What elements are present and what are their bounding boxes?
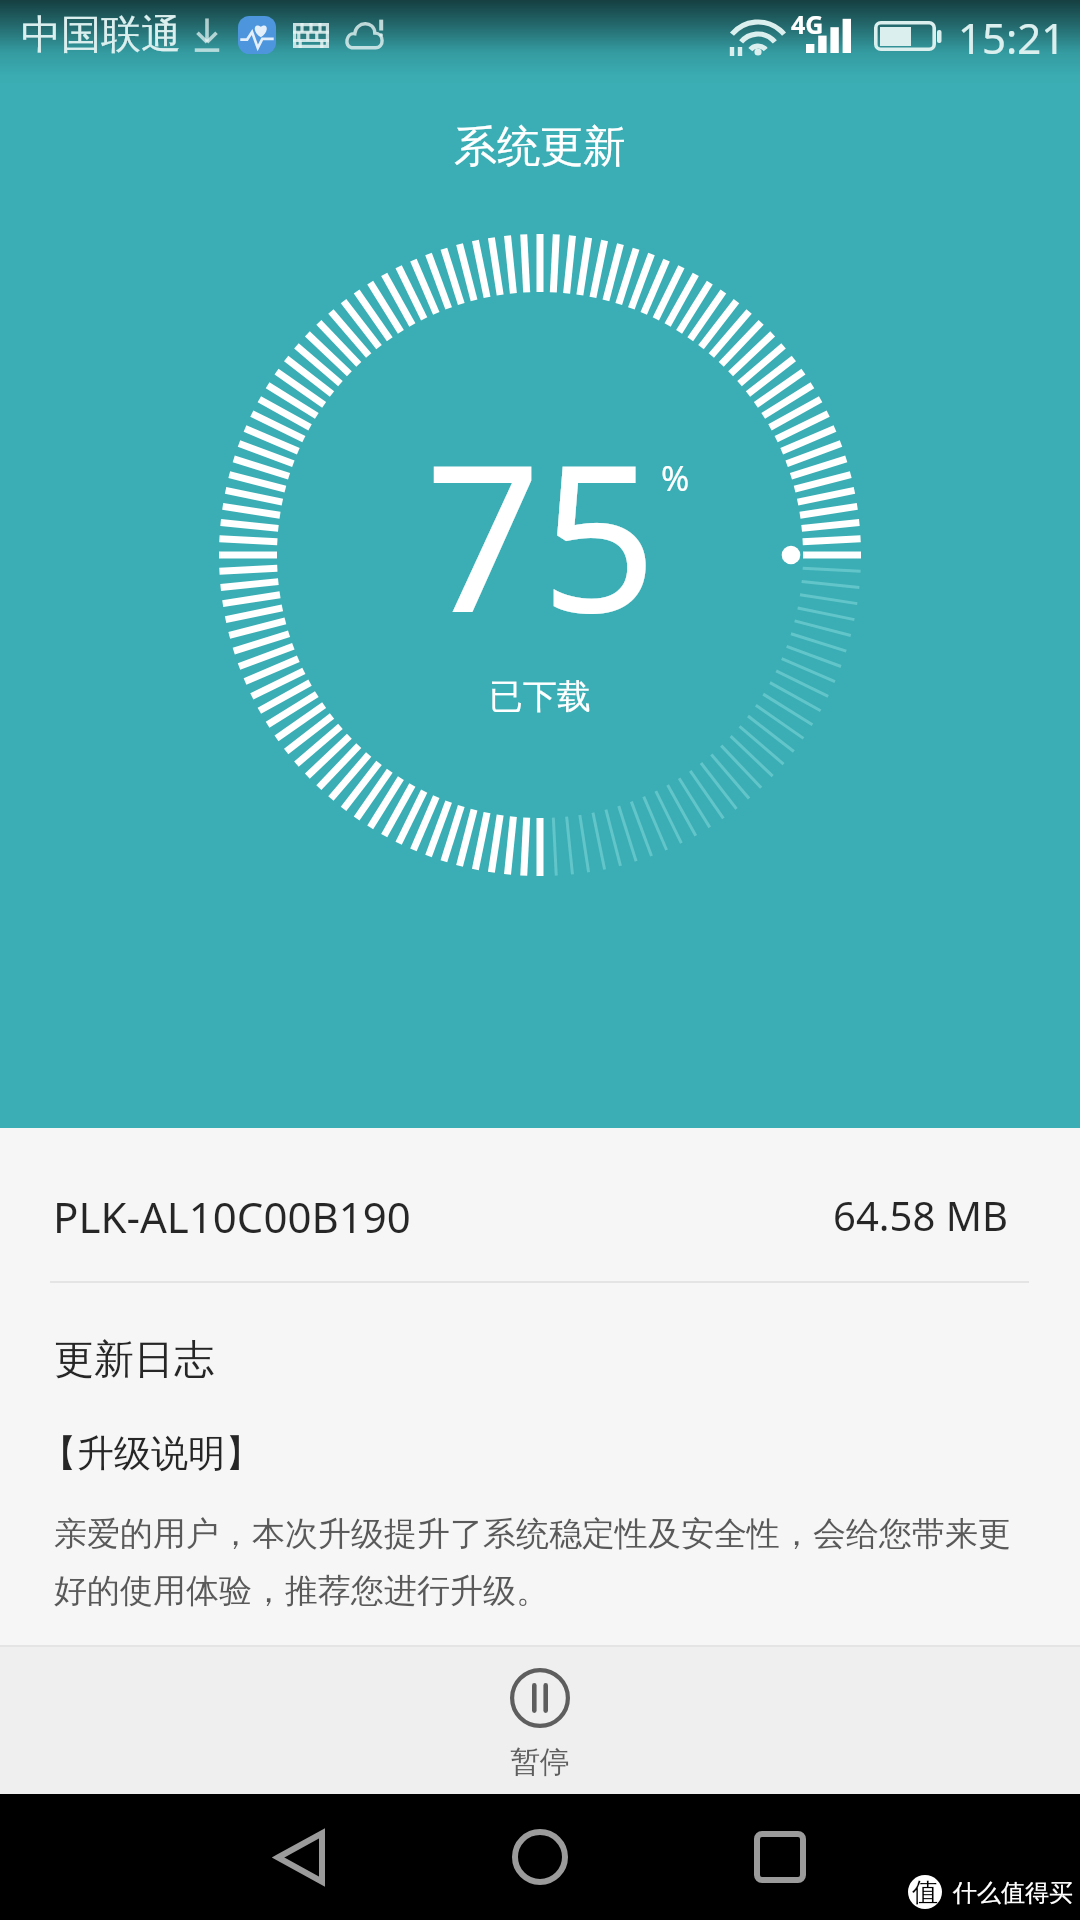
staticText: 中国联通: [21, 9, 181, 59]
staticText: 暂停: [510, 1743, 570, 1781]
staticText: 75: [425, 395, 658, 671]
staticText: 什么值得买: [953, 1878, 1073, 1908]
staticText: %: [661, 455, 690, 501]
staticText: 已下载: [489, 675, 591, 718]
staticText: 【升级说明】: [40, 1430, 262, 1477]
staticText: 4G: [791, 7, 824, 41]
button[interactable]: Back: [240, 1797, 360, 1917]
button[interactable]: Home: [480, 1797, 600, 1917]
staticText: 系统更新: [454, 120, 626, 174]
staticText: 值: [912, 1876, 938, 1909]
staticText: 更新日志: [54, 1334, 214, 1384]
staticText: 亲爱的用户，本次升级提升了系统稳定性及安全性，会给您带来更好的使用体验，推荐您进…: [54, 1513, 1022, 1611]
button[interactable]: Recents: [720, 1797, 840, 1917]
button[interactable]: 暂停: [0, 1645, 1080, 1794]
staticText: 15:21: [958, 9, 1066, 66]
staticText: PLK-AL10C00B190: [53, 1188, 411, 1245]
staticText: 64.58 MB: [700, 1188, 1008, 1242]
